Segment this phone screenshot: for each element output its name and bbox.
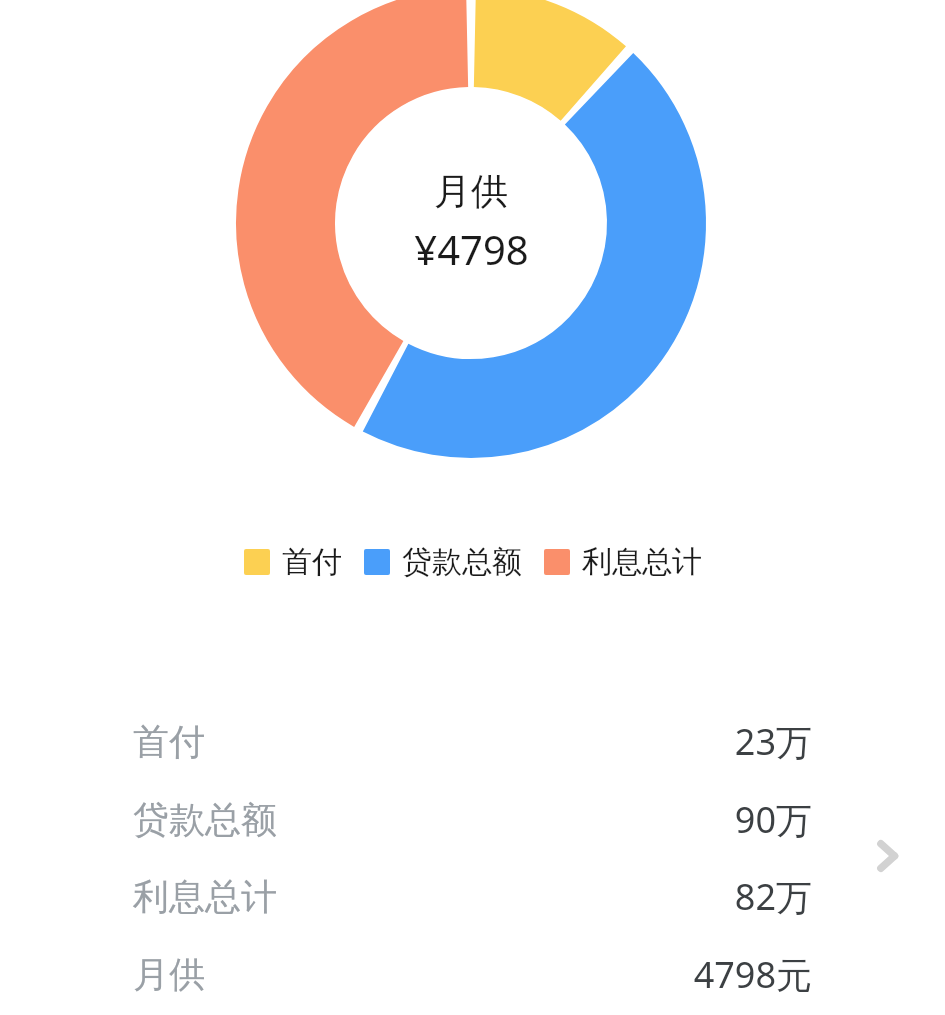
staticText: 月供 <box>434 168 508 215</box>
button[interactable]: 月供 <box>0 943 945 1005</box>
button[interactable]: 贷款总额 <box>0 788 945 850</box>
button[interactable]: 贷款总额 <box>364 543 522 581</box>
button[interactable]: 利息总计 <box>0 865 945 927</box>
button[interactable]: Next <box>858 827 916 885</box>
staticText: 4798元 <box>693 950 812 999</box>
staticText: 利息总计 <box>582 543 702 581</box>
staticText: 贷款总额 <box>133 797 277 842</box>
staticText: 首付 <box>133 719 205 764</box>
button[interactable]: 首付 <box>244 543 342 581</box>
staticText: 23万 <box>734 717 812 766</box>
button[interactable]: 利息总计 <box>544 543 702 581</box>
button[interactable]: 首付 <box>0 710 945 772</box>
staticText: 利息总计 <box>133 874 277 919</box>
staticText: 月供 <box>133 952 205 997</box>
staticText: 首付 <box>282 543 342 581</box>
staticText: 贷款总额 <box>402 543 522 581</box>
staticText: 82万 <box>734 872 812 921</box>
staticText: 90万 <box>734 795 812 844</box>
staticText: ¥4798 <box>414 222 529 276</box>
